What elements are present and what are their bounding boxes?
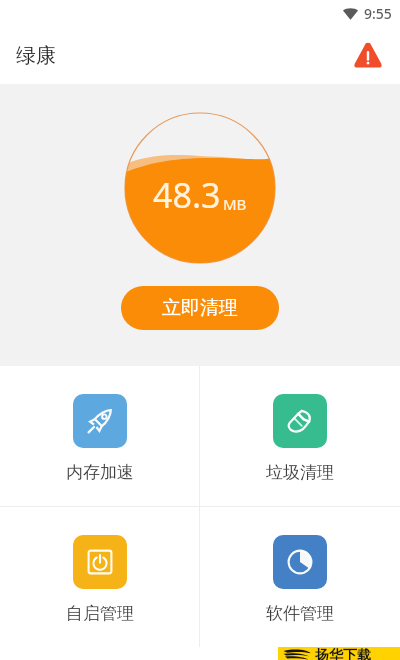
staticText: 48.3: [153, 172, 221, 218]
button[interactable]: 软件管理: [200, 507, 400, 647]
button[interactable]: 垃圾清理: [200, 366, 400, 506]
staticText: MB: [223, 194, 247, 214]
button[interactable]: 内存加速: [0, 366, 199, 506]
button[interactable]: 立即清理: [121, 286, 279, 330]
staticText: 内存加速: [66, 462, 134, 483]
staticText: 扬华下载: [315, 647, 371, 660]
staticText: 绿康: [16, 43, 56, 68]
staticText: 9:55: [364, 4, 392, 23]
staticText: 自启管理: [66, 603, 134, 624]
staticText: 立即清理: [162, 296, 238, 320]
button[interactable]: 自启管理: [0, 507, 199, 647]
staticText: 软件管理: [266, 603, 334, 624]
button[interactable]: Warning: [346, 33, 390, 77]
staticText: 垃圾清理: [266, 462, 334, 483]
